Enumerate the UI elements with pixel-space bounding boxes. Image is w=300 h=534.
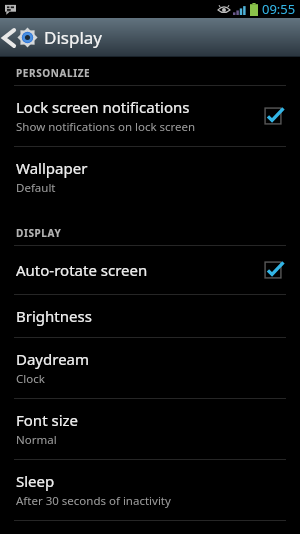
staticText: Brightness [16,306,92,326]
button[interactable]: Lock screen notifications [0,86,300,146]
staticText: Default [16,180,56,196]
staticText: DISPLAY [16,226,62,240]
staticText: Show notifications on lock screen [16,119,196,135]
staticText: Sleep [16,471,55,491]
staticText: Clock [16,371,45,387]
staticText: Font size [16,410,79,430]
staticText: Wallpaper [16,158,88,178]
button[interactable]: Auto-rotate screen [0,246,300,294]
staticText: After 30 seconds of inactivity [16,493,171,509]
staticText: PERSONALIZE [16,66,91,80]
staticText: 09:55 [262,0,296,18]
staticText: Auto-rotate screen [16,260,148,280]
button[interactable]: Daydream [0,338,300,398]
button[interactable]: Sleep [0,460,300,520]
button[interactable]: Toggle Lock screen notifications [260,103,286,129]
staticText: Normal [16,432,57,448]
staticText: Daydream [16,349,90,369]
button[interactable]: Wallpaper [0,147,300,207]
button[interactable]: Toggle Auto-rotate screen [260,257,286,283]
button[interactable]: Font size [0,399,300,459]
staticText: Lock screen notifications [16,97,190,117]
button[interactable]: Brightness [0,295,300,337]
button[interactable]: Back [0,23,44,52]
staticText: Display [44,26,102,49]
